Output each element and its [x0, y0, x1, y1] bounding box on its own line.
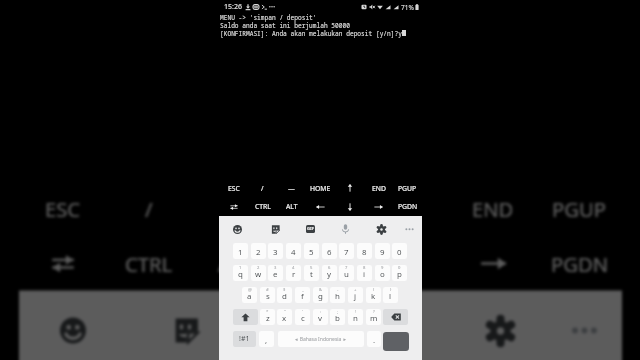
button[interactable]: HOME [278, 180, 364, 235]
button[interactable]: i [357, 265, 372, 281]
button[interactable]: HOME [306, 179, 335, 197]
button[interactable]: n [348, 309, 363, 325]
button[interactable]: . [367, 331, 381, 347]
button[interactable]: 9 [375, 243, 390, 259]
button[interactable]: 2 [251, 243, 266, 259]
button[interactable]: GIF [303, 222, 317, 236]
staticText: r [292, 269, 296, 280]
button[interactable]: ↓ [364, 235, 450, 290]
staticText: c [301, 313, 305, 324]
staticText: b [335, 313, 340, 324]
button[interactable]: k [366, 287, 381, 303]
button[interactable]: Stickers [268, 222, 282, 236]
button[interactable]: e [268, 265, 283, 281]
button[interactable]: z [260, 309, 275, 325]
button[interactable]: CTRL [248, 197, 277, 216]
button[interactable]: Settings [479, 309, 521, 351]
button[interactable]: ESC [219, 179, 248, 197]
button[interactable]: TAB [219, 197, 248, 216]
button[interactable]: b [330, 309, 345, 325]
button[interactable]: PGDN [393, 197, 422, 216]
button[interactable]: CTRL [106, 235, 192, 290]
button[interactable]: p [392, 265, 407, 281]
button[interactable]: s [260, 287, 275, 303]
button[interactable]: 4 [286, 243, 301, 259]
button[interactable]: Space [278, 331, 364, 347]
button[interactable]: f [295, 287, 310, 303]
button[interactable]: — [277, 179, 306, 197]
staticText: END [472, 194, 514, 222]
button[interactable]: / [248, 179, 277, 197]
staticText: 1 [239, 265, 242, 271]
button[interactable]: t [304, 265, 319, 281]
button[interactable]: Voice input [338, 222, 352, 236]
staticText: Saldo anda saat ini berjumlah 50000 [220, 21, 350, 29]
button[interactable]: r [286, 265, 301, 281]
button[interactable]: → [364, 197, 393, 216]
button[interactable]: → [450, 235, 536, 290]
button[interactable]: h [330, 287, 345, 303]
button[interactable]: END [450, 180, 536, 235]
button[interactable]: 1 [233, 243, 248, 259]
button[interactable]: m [366, 309, 381, 325]
staticText: v [318, 313, 323, 324]
button[interactable]: Emoji [52, 309, 94, 351]
button[interactable]: ESC [19, 180, 106, 235]
button[interactable]: ↑ [364, 180, 450, 235]
button[interactable]: a [242, 287, 257, 303]
button[interactable]: PGUP [393, 179, 422, 197]
button[interactable]: d [277, 287, 292, 303]
button[interactable]: , [259, 331, 274, 347]
button[interactable]: More options [402, 222, 416, 236]
button[interactable]: — [192, 180, 278, 235]
button[interactable]: 6 [322, 243, 337, 259]
button[interactable]: 8 [357, 243, 372, 259]
button[interactable]: ALT [192, 235, 278, 290]
button[interactable]: v [313, 309, 328, 325]
button[interactable]: ↓ [335, 197, 364, 216]
staticText: PGDN [398, 202, 418, 211]
button[interactable]: 5 [304, 243, 319, 259]
button[interactable]: More options [563, 309, 605, 351]
button[interactable]: g [313, 287, 328, 303]
button[interactable]: q [233, 265, 248, 281]
staticText: CTRL [125, 249, 173, 277]
staticText: : [320, 309, 322, 315]
button[interactable]: Settings [374, 222, 388, 236]
button[interactable]: Emoji [230, 222, 244, 236]
button[interactable]: w [251, 265, 266, 281]
staticText: 0 [398, 265, 401, 271]
button[interactable]: c [295, 309, 310, 325]
button[interactable]: ← [278, 235, 364, 290]
button[interactable]: ALT [277, 197, 306, 216]
staticText: ALT [286, 202, 298, 211]
button[interactable]: Stickers [165, 309, 207, 351]
button[interactable]: j [348, 287, 363, 303]
button[interactable]: Voice input [372, 309, 414, 351]
button[interactable]: x [277, 309, 292, 325]
button[interactable]: GIF [268, 309, 310, 351]
staticText: — [225, 194, 246, 222]
staticText: ; [337, 309, 339, 315]
button[interactable]: ← [306, 197, 335, 216]
button[interactable]: 3 [268, 243, 283, 259]
button[interactable]: Enter [383, 332, 409, 351]
staticText: ( [373, 287, 375, 293]
button[interactable]: / [106, 180, 192, 235]
button[interactable]: o [375, 265, 390, 281]
button[interactable]: 7 [339, 243, 354, 259]
button[interactable]: u [339, 265, 354, 281]
button[interactable]: Shift [233, 309, 258, 325]
button[interactable]: Backspace [383, 309, 408, 325]
button[interactable]: TAB [19, 235, 106, 290]
button[interactable]: 0 [392, 243, 407, 259]
staticText: x [282, 313, 287, 324]
staticText: 9 [380, 247, 385, 258]
button[interactable]: !#1 [233, 331, 256, 347]
button[interactable]: END [364, 179, 393, 197]
button[interactable]: y [322, 265, 337, 281]
button[interactable]: PGDN [536, 235, 622, 290]
button[interactable]: l [383, 287, 398, 303]
button[interactable]: PGUP [536, 180, 622, 235]
button[interactable]: ↑ [335, 179, 364, 197]
